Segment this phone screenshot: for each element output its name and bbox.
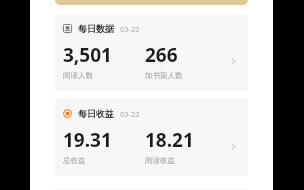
- button[interactable]: [55, 0, 248, 5]
- button[interactable]: 每日收益: [55, 99, 248, 176]
- staticText: 加书架人数: [145, 71, 183, 80]
- staticText: 总收益: [63, 156, 86, 165]
- staticText: 03-22: [120, 24, 140, 34]
- staticText: 19.31: [63, 127, 112, 153]
- staticText: 每日数据: [78, 23, 114, 34]
- button[interactable]: 查看详情: [226, 139, 240, 153]
- button[interactable]: 查看详情: [226, 54, 240, 68]
- staticText: 每日收益: [78, 108, 114, 119]
- staticText: 18.21: [145, 127, 194, 153]
- staticText: 3,501: [63, 42, 112, 68]
- button[interactable]: 每日数据: [55, 14, 248, 91]
- staticText: 阅读收益: [145, 156, 175, 165]
- staticText: 03-22: [120, 109, 140, 119]
- staticText: 阅读人数: [63, 71, 93, 80]
- staticText: 266: [145, 42, 178, 68]
